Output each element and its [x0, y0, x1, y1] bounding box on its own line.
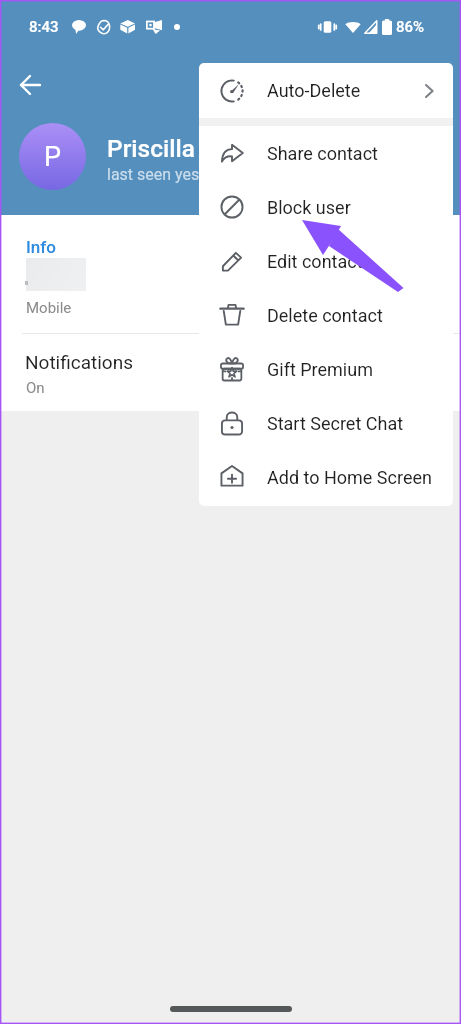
staticText: Priscilla — [107, 134, 195, 163]
button[interactable]: Start Secret Chat — [199, 396, 453, 450]
button[interactable]: Back — [8, 62, 54, 108]
staticText: Start Secret Chat — [267, 413, 404, 434]
button[interactable]: Delete contact — [199, 288, 453, 342]
staticText: Auto-Delete — [267, 80, 361, 101]
staticText: Delete contact — [267, 305, 383, 326]
button[interactable]: Auto-Delete — [199, 63, 453, 118]
staticText: last seen yesterday — [107, 165, 244, 184]
staticText: 86% — [396, 18, 425, 36]
button[interactable]: Block user — [199, 180, 453, 234]
button[interactable]: Add to Home Screen — [199, 450, 453, 504]
button[interactable]: Edit contact — [199, 234, 453, 288]
button[interactable]: Share contact — [199, 126, 453, 180]
staticText: Block user — [267, 197, 351, 218]
staticText: Mobile — [26, 299, 72, 317]
staticText: Info — [26, 237, 56, 257]
button[interactable]: Gift Premium — [199, 342, 453, 396]
staticText: Gift Premium — [267, 359, 373, 380]
staticText: Notifications — [25, 351, 134, 373]
staticText: Share contact — [267, 143, 378, 164]
staticText: 8:43 — [29, 18, 59, 36]
staticText: Edit contact — [267, 251, 363, 272]
staticText: On — [26, 379, 45, 397]
staticText: P — [44, 141, 62, 173]
staticText: Add to Home Screen — [267, 467, 432, 488]
